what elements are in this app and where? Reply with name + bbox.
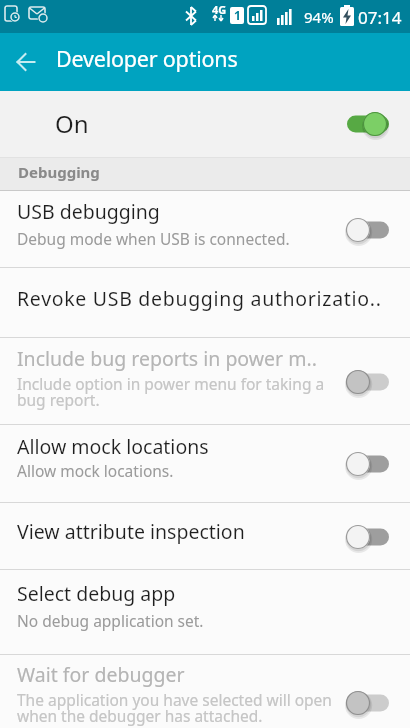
staticText: Debug mode when USB is connected. bbox=[17, 228, 290, 249]
button[interactable]: Revoke USB debugging authorizatio.. bbox=[0, 268, 410, 338]
button[interactable]: Allow mock locations bbox=[0, 425, 410, 503]
button[interactable] bbox=[0, 33, 54, 91]
staticText: Allow mock locations. bbox=[17, 460, 174, 481]
button[interactable]: View attribute inspection bbox=[0, 503, 410, 570]
staticText: 07:14 bbox=[358, 6, 402, 29]
staticText: Debugging bbox=[18, 162, 100, 182]
staticText: Select debug app bbox=[17, 580, 176, 607]
button[interactable]: Select debug app bbox=[0, 570, 410, 655]
staticText: 1 bbox=[234, 7, 241, 23]
staticText: Include bug reports in power m.. bbox=[17, 345, 317, 372]
staticText: 4G bbox=[212, 2, 227, 17]
button[interactable]: Wait for debugger bbox=[0, 655, 410, 728]
staticText: The application you have selected will o… bbox=[17, 689, 332, 726]
staticText: 94% bbox=[304, 7, 334, 27]
staticText: Wait for debugger bbox=[17, 661, 185, 688]
staticText: Include option in power menu for taking … bbox=[17, 373, 325, 410]
staticText: View attribute inspection bbox=[17, 518, 245, 545]
staticText: USB debugging bbox=[17, 198, 160, 225]
button[interactable]: On bbox=[0, 91, 410, 157]
staticText: Developer options bbox=[56, 44, 238, 73]
button[interactable]: USB debugging bbox=[0, 191, 410, 268]
staticText: Revoke USB debugging authorizatio.. bbox=[17, 285, 382, 312]
staticText: No debug application set. bbox=[17, 610, 204, 631]
button[interactable]: Include bug reports in power m.. bbox=[0, 338, 410, 425]
staticText: On bbox=[55, 107, 89, 140]
staticText: Allow mock locations bbox=[17, 433, 209, 460]
